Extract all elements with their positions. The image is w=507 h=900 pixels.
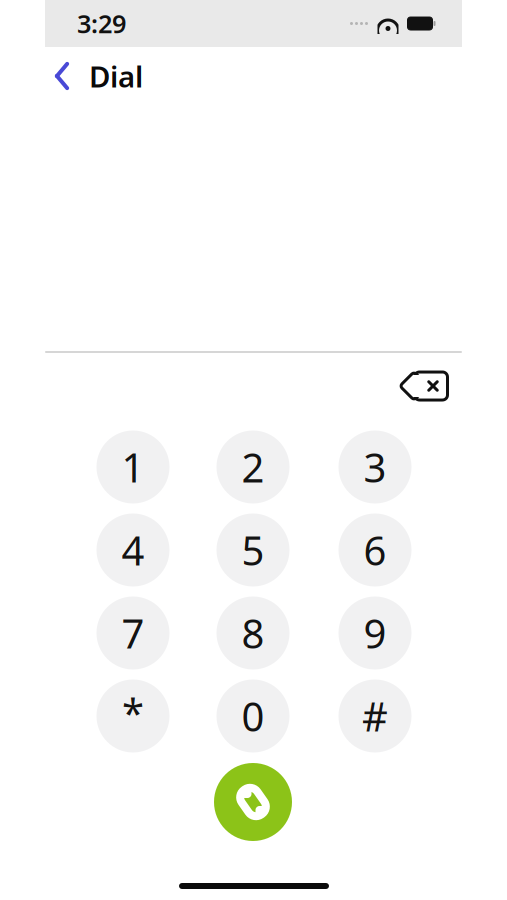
staticText: 5 xyxy=(241,523,264,576)
button[interactable]: 4 xyxy=(96,513,169,586)
staticText: 2 xyxy=(241,440,264,493)
staticText: * xyxy=(122,685,144,738)
staticText: 9 xyxy=(363,606,386,659)
staticText: 3:29 xyxy=(77,7,126,40)
staticText: 3 xyxy=(363,440,386,493)
button[interactable]: 0 xyxy=(216,679,289,752)
button[interactable]: * xyxy=(96,679,169,752)
button[interactable]: Delete xyxy=(393,363,457,409)
button[interactable]: 7 xyxy=(96,596,169,669)
staticText: 1 xyxy=(121,440,144,493)
staticText: 0 xyxy=(241,689,264,742)
staticText: Dial xyxy=(89,56,143,95)
button[interactable]: 1 xyxy=(96,430,169,503)
button[interactable]: 2 xyxy=(216,430,289,503)
button[interactable]: 6 xyxy=(338,513,411,586)
button[interactable]: # xyxy=(338,679,411,752)
staticText: # xyxy=(362,689,388,742)
button[interactable]: 8 xyxy=(216,596,289,669)
staticText: 4 xyxy=(121,523,144,576)
button[interactable]: 9 xyxy=(338,596,411,669)
button[interactable]: 3 xyxy=(338,430,411,503)
staticText: 8 xyxy=(241,606,264,659)
button[interactable]: Back xyxy=(45,56,79,96)
button[interactable]: 5 xyxy=(216,513,289,586)
button[interactable]: Call xyxy=(214,763,292,841)
staticText: 6 xyxy=(363,523,386,576)
staticText: 7 xyxy=(121,606,144,659)
